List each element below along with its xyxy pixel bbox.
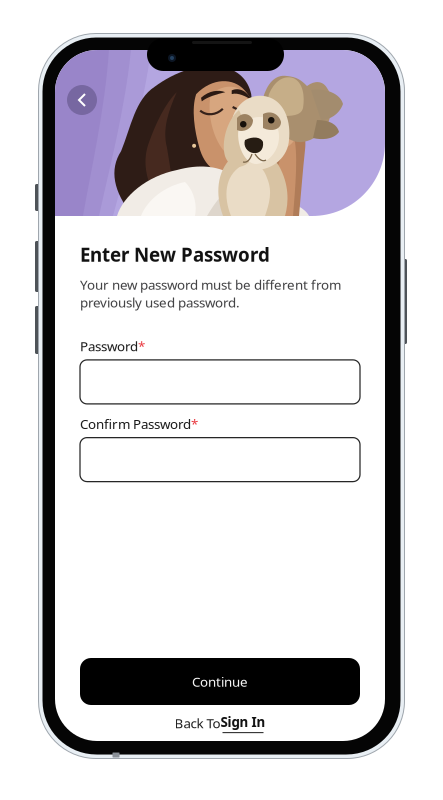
staticText: *: [191, 415, 198, 433]
staticText: *: [138, 337, 145, 355]
staticText: Your new password must be different from…: [80, 276, 341, 311]
staticText: Back To: [174, 714, 220, 732]
button[interactable]: Back: [67, 85, 97, 115]
staticText: Sign In: [220, 713, 265, 731]
staticText: Password: [80, 337, 138, 355]
button[interactable]: Continue: [80, 658, 360, 705]
staticText: Confirm Password: [80, 415, 191, 433]
staticText: Continue: [192, 673, 248, 690]
staticText: Enter New Password: [80, 242, 270, 267]
button[interactable]: Back To: [80, 711, 360, 735]
